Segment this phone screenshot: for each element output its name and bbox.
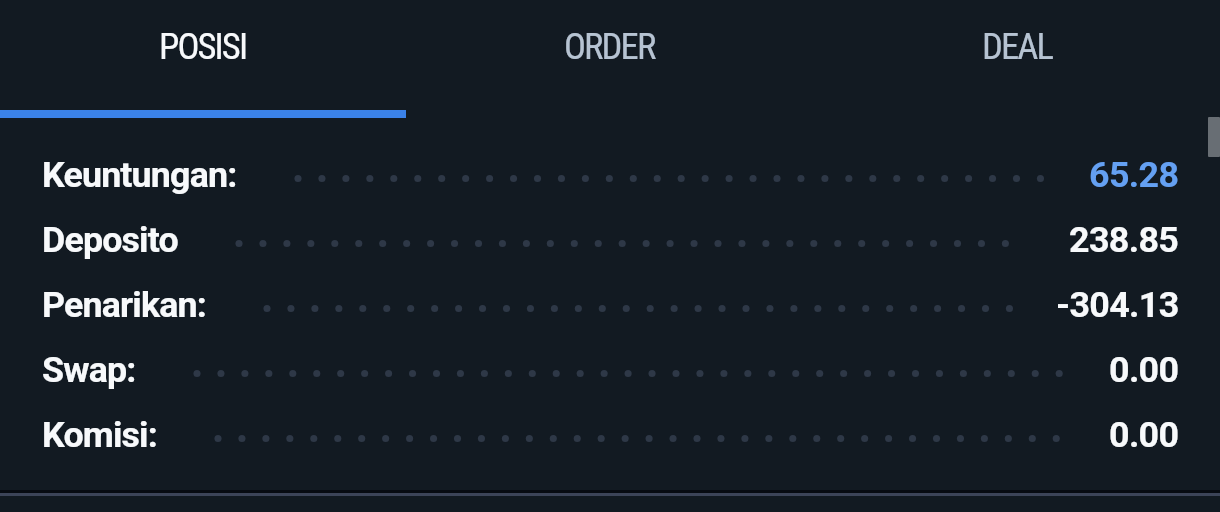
staticText: -304.13	[1056, 284, 1179, 326]
staticText: Swap:	[42, 349, 136, 391]
staticText: POSISI	[159, 25, 247, 68]
staticText: 238.85	[1069, 219, 1179, 261]
staticText: Keuntungan:	[42, 154, 237, 196]
button[interactable]: ORDER	[406, 0, 813, 92]
other: separator	[267, 272, 1013, 337]
button[interactable]: Keuntungan:	[0, 142, 1220, 207]
staticText: Komisi:	[42, 414, 157, 456]
button[interactable]: Deposito	[0, 207, 1220, 272]
button[interactable]: Swap:	[0, 337, 1220, 402]
staticText: 0.00	[1109, 349, 1179, 391]
staticText: ORDER	[564, 25, 655, 68]
other: separator	[239, 207, 1026, 272]
staticText: 65.28	[1089, 154, 1179, 196]
button[interactable]: POSISI	[0, 0, 406, 92]
staticText: DEAL	[982, 25, 1052, 68]
button[interactable]: Komisi:	[0, 402, 1220, 467]
staticText: Deposito	[42, 219, 178, 261]
other: separator	[197, 337, 1066, 402]
button[interactable]: Penarikan:	[0, 272, 1220, 337]
button[interactable]: DEAL	[813, 0, 1220, 92]
staticText: 0.00	[1109, 414, 1179, 456]
other: separator	[218, 402, 1066, 467]
staticText: Penarikan:	[42, 284, 206, 326]
other: separator	[298, 142, 1046, 207]
